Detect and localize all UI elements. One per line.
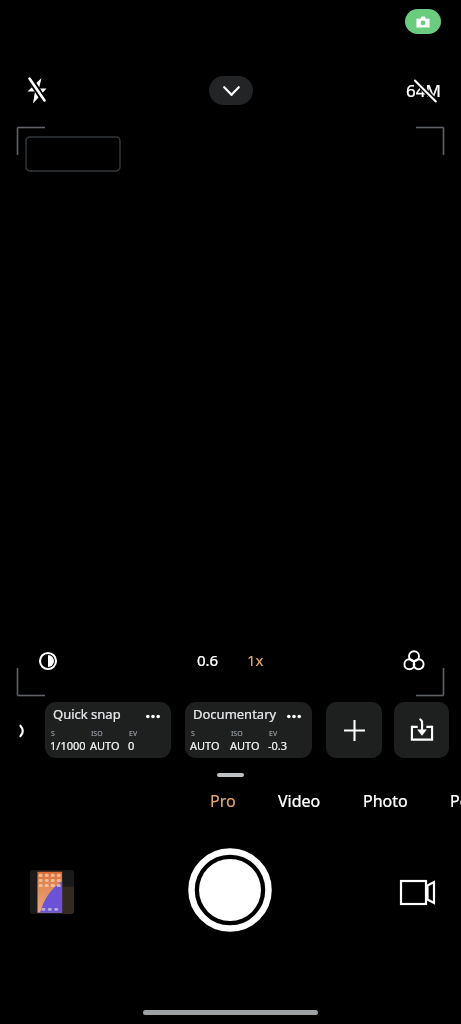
staticText: Pro bbox=[210, 790, 236, 812]
staticText: AUTO bbox=[190, 738, 220, 753]
button[interactable]: Documentary bbox=[185, 702, 312, 758]
staticText: EV bbox=[269, 729, 278, 739]
button[interactable]: Take photo bbox=[188, 848, 272, 932]
staticText: Portrait bbox=[450, 790, 461, 812]
staticText: Video bbox=[278, 790, 321, 812]
button[interactable]: Add preset bbox=[326, 702, 382, 758]
button[interactable]: Save preset bbox=[394, 702, 449, 758]
staticText: Documentary bbox=[193, 705, 277, 723]
button[interactable]: Video bbox=[257, 784, 342, 818]
staticText: S bbox=[51, 729, 55, 739]
staticText: AUTO bbox=[230, 738, 260, 753]
button[interactable]: Quick snap bbox=[45, 702, 171, 758]
button[interactable]: 64 megapixel off bbox=[405, 78, 443, 104]
staticText: Photo bbox=[363, 790, 408, 812]
button[interactable]: Contrast bbox=[35, 648, 61, 674]
staticText: AUTO bbox=[90, 738, 120, 753]
button[interactable]: Photo bbox=[342, 784, 429, 818]
staticText: EV bbox=[129, 729, 138, 739]
staticText: 0 bbox=[128, 738, 135, 753]
button[interactable]: 1x bbox=[247, 650, 264, 670]
button[interactable]: Gallery bbox=[30, 870, 74, 914]
button[interactable]: Portrait bbox=[429, 784, 461, 818]
button[interactable]: Color filters bbox=[401, 647, 427, 673]
button[interactable]: Pro bbox=[189, 784, 257, 818]
other: Camera in use bbox=[405, 9, 441, 34]
button[interactable]: Flash off bbox=[21, 75, 53, 104]
staticText: S bbox=[191, 729, 195, 739]
staticText: 1/1000 bbox=[50, 738, 86, 753]
staticText: 64M bbox=[406, 79, 441, 102]
button[interactable]: More settings bbox=[209, 76, 253, 105]
staticText: Quick snap bbox=[53, 705, 121, 723]
staticText: ISO bbox=[91, 729, 103, 739]
staticText: -0.3 bbox=[268, 738, 288, 753]
button[interactable]: 0.6 bbox=[197, 650, 219, 670]
button[interactable]: Expand presets bbox=[12, 720, 34, 742]
staticText: ISO bbox=[231, 729, 243, 739]
button[interactable]: Switch to video bbox=[396, 876, 436, 908]
